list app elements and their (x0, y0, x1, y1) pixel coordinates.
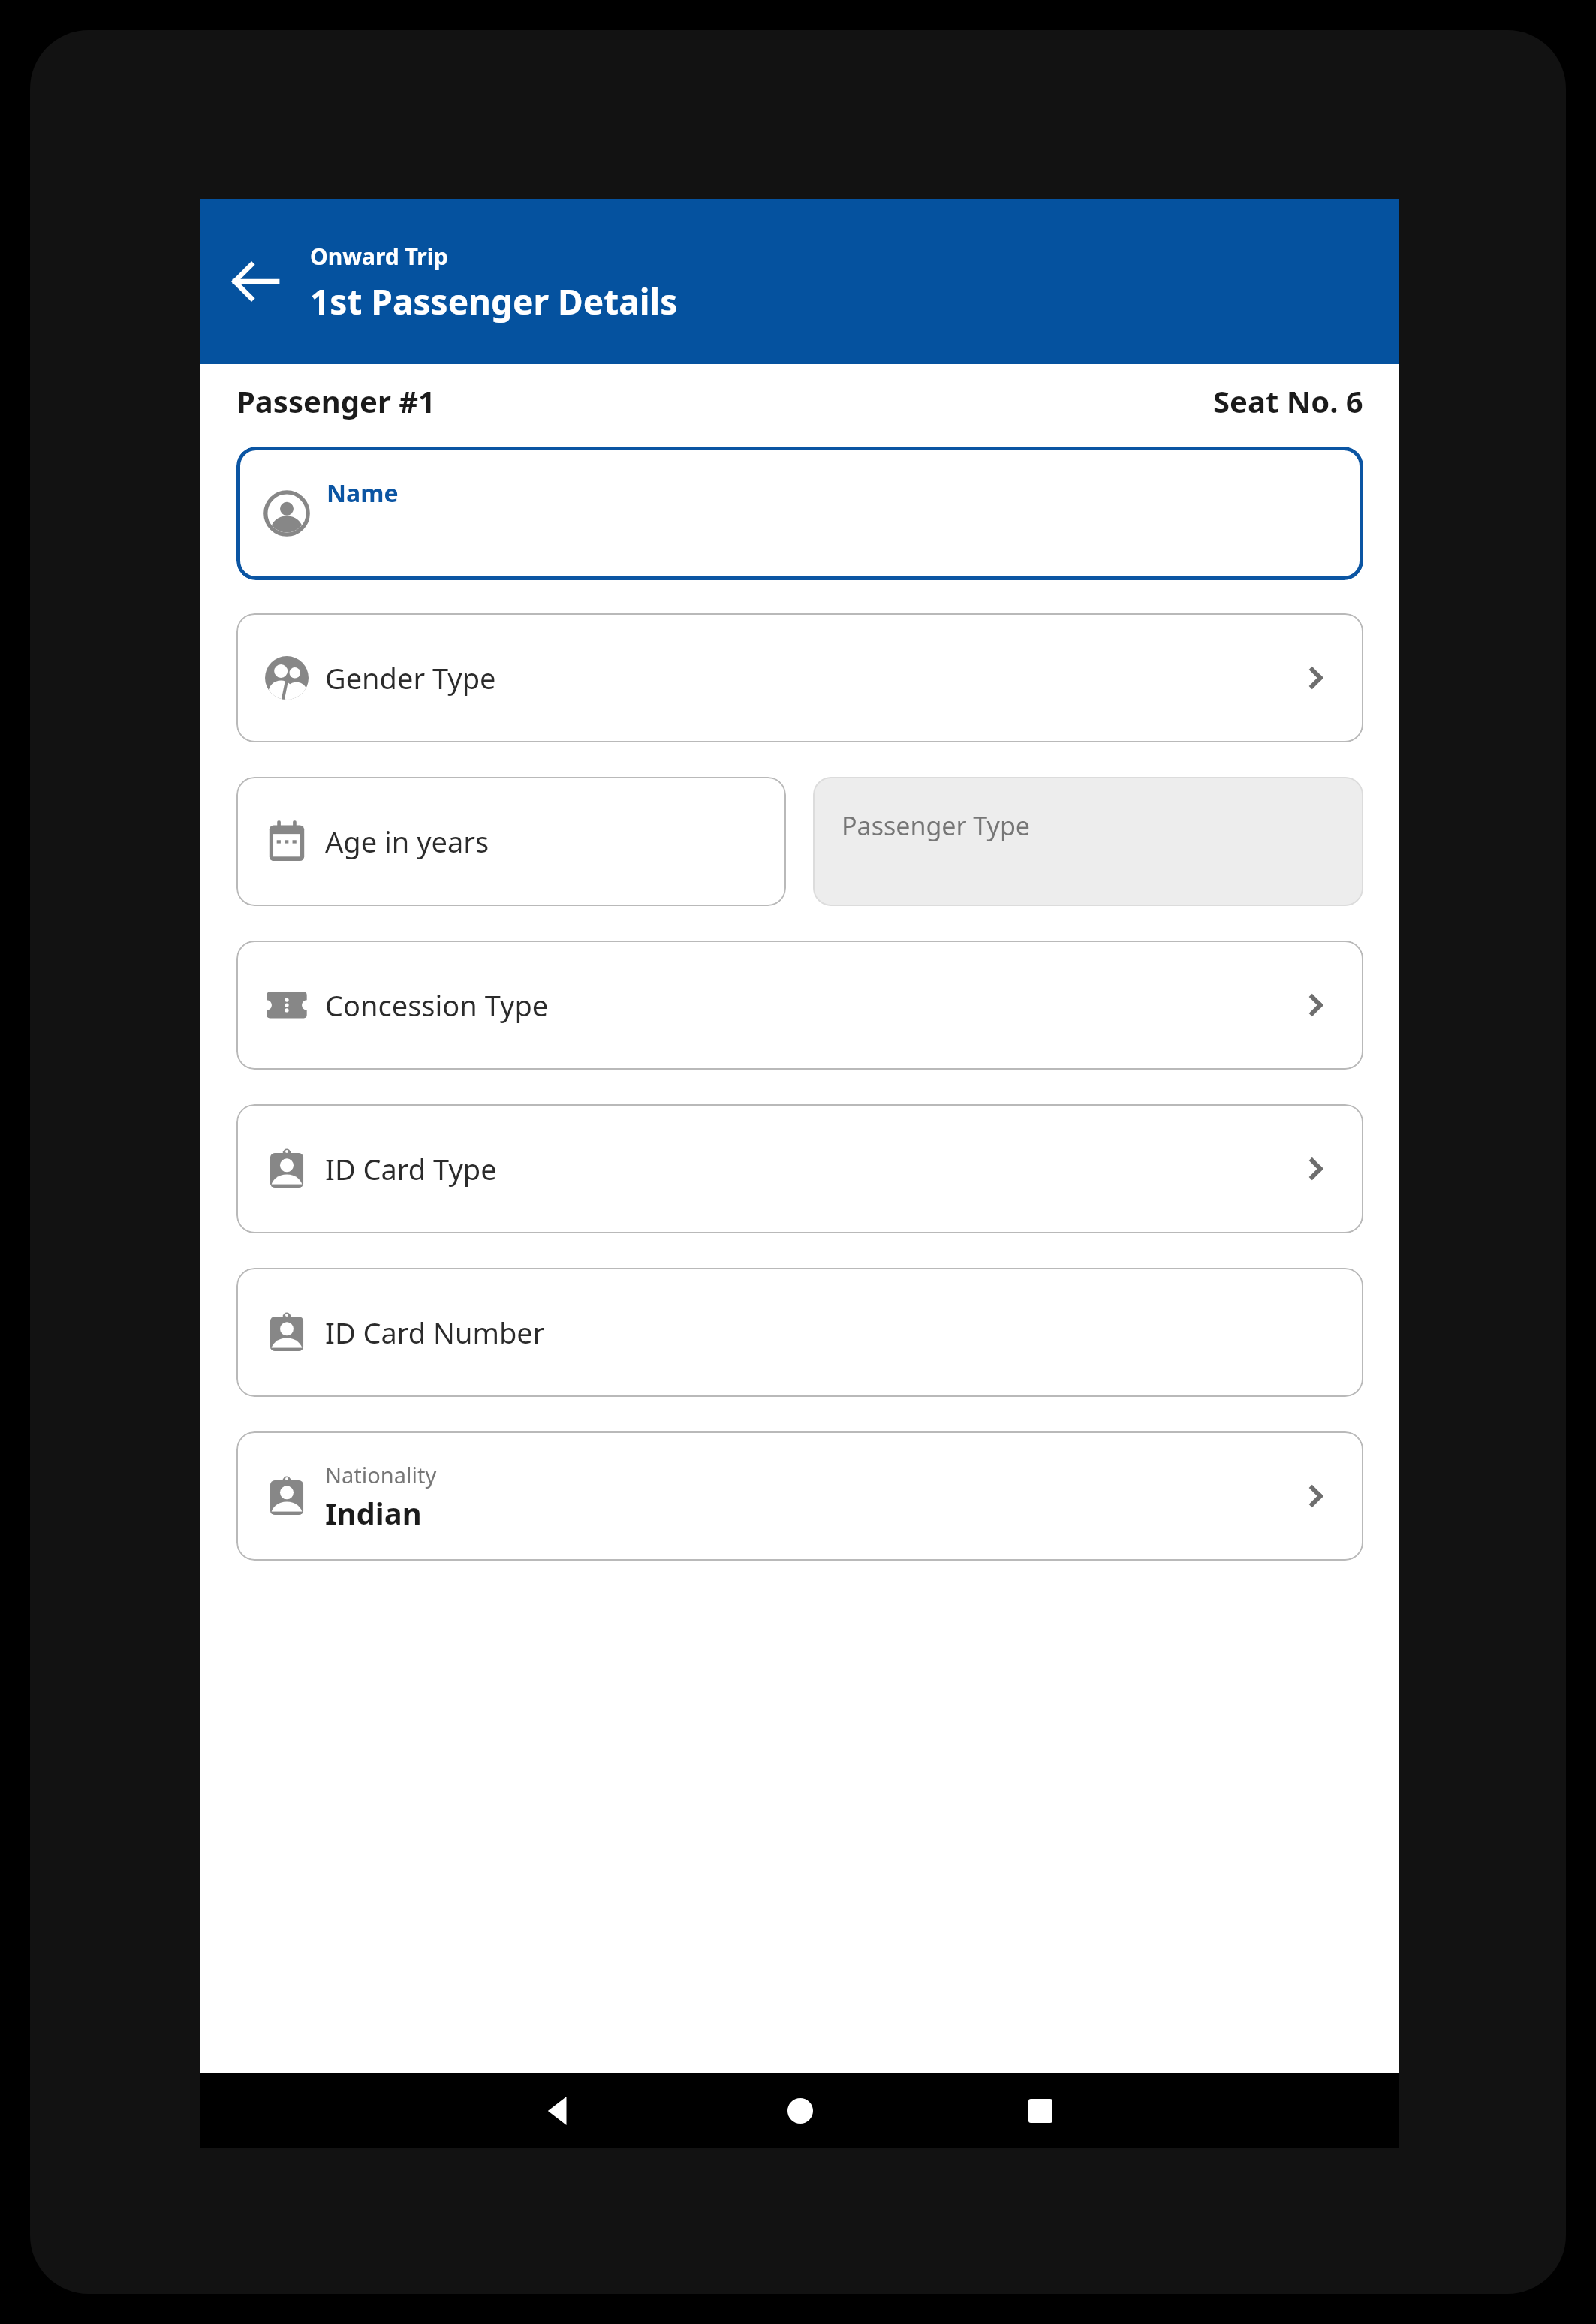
staticText: ID Card Number (325, 1313, 545, 1352)
button[interactable]: Home (764, 2075, 836, 2147)
button[interactable]: Concession Type (236, 941, 1363, 1070)
button[interactable]: Recent apps (1004, 2075, 1077, 2147)
button[interactable]: Passenger Type (813, 777, 1363, 906)
staticText: Seat No. 6 (1213, 381, 1363, 421)
staticText: Nationality (325, 1460, 437, 1489)
staticText: Gender Type (325, 658, 496, 697)
button[interactable]: ID Card Number (236, 1268, 1363, 1397)
button[interactable]: Gender Type (236, 613, 1363, 742)
staticText: Name (327, 477, 399, 510)
staticText: Concession Type (325, 986, 549, 1025)
staticText: Indian (325, 1492, 422, 1533)
staticText: Passenger Type (842, 808, 1031, 843)
staticText: Age in years (325, 822, 489, 861)
button[interactable]: ID Card Type (236, 1104, 1363, 1233)
staticText: Onward Trip (310, 241, 448, 272)
staticText: ID Card Type (325, 1149, 497, 1188)
button[interactable]: Back (523, 2075, 595, 2147)
button[interactable]: Nationality (236, 1431, 1363, 1561)
button[interactable]: Back (214, 240, 297, 323)
button[interactable]: Age in years (236, 777, 786, 906)
staticText: Passenger #1 (236, 381, 435, 421)
button[interactable]: Name (236, 447, 1363, 580)
staticText: 1st Passenger Details (310, 278, 678, 325)
